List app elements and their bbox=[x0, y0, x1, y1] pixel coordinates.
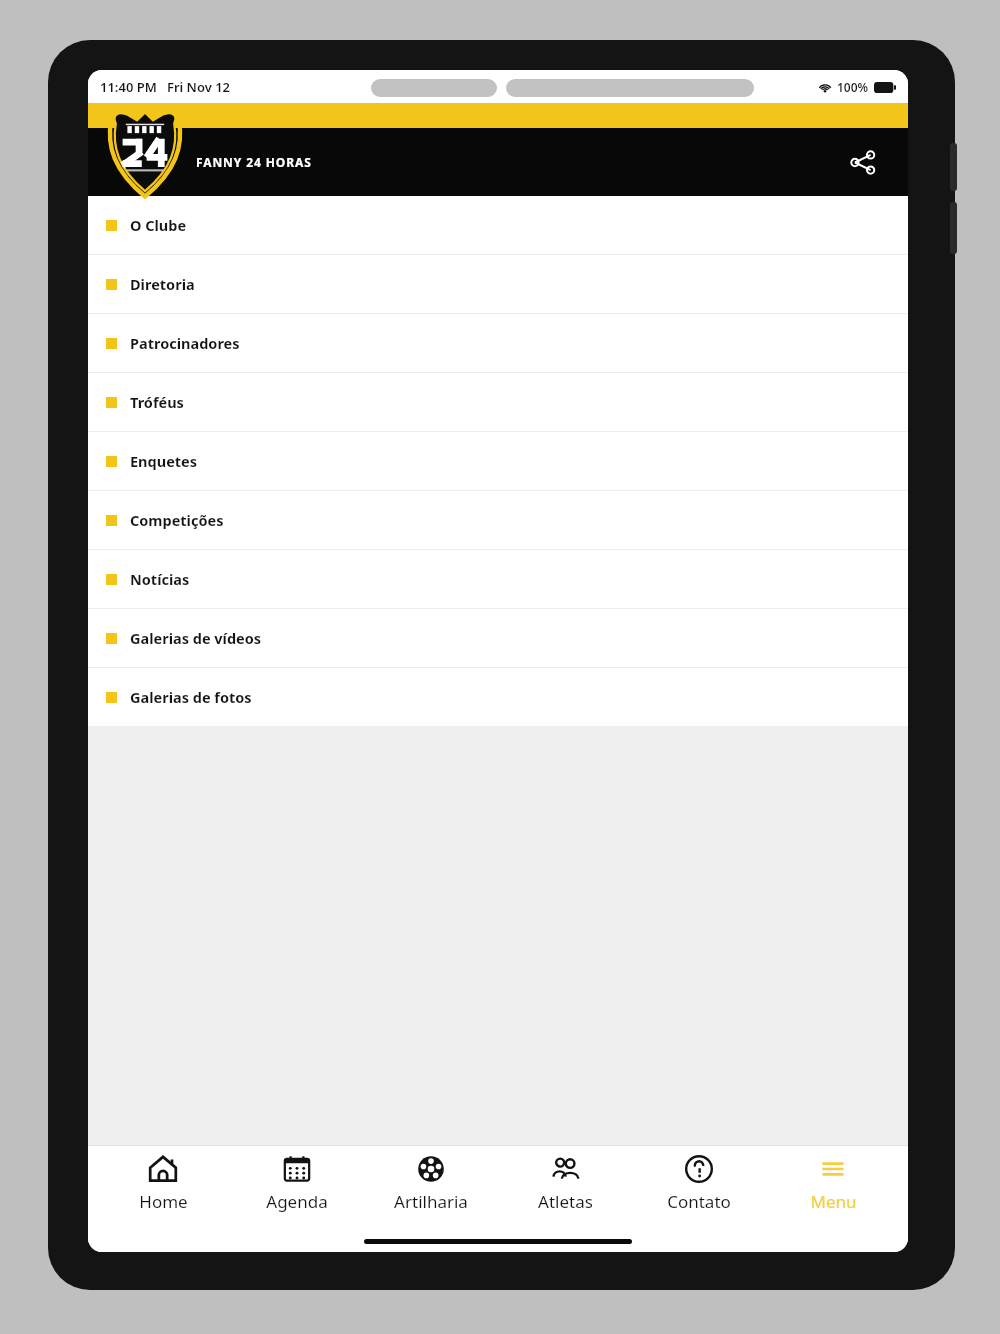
button[interactable]: O Clube bbox=[88, 196, 908, 254]
staticText: Enquetes bbox=[130, 451, 198, 471]
button[interactable]: Atletas bbox=[506, 1153, 624, 1230]
button[interactable]: Artilharia bbox=[372, 1153, 490, 1230]
staticText: Home bbox=[139, 1190, 188, 1213]
button[interactable]: Contato bbox=[640, 1153, 758, 1230]
button[interactable]: Notícias bbox=[88, 550, 908, 608]
staticText: FANNY 24 HORAS bbox=[196, 154, 312, 170]
button[interactable]: Home bbox=[104, 1153, 222, 1230]
staticText: Patrocinadores bbox=[130, 333, 240, 353]
staticText: Tróféus bbox=[130, 392, 184, 412]
staticText: Artilharia bbox=[394, 1190, 468, 1213]
staticText: Galerias de fotos bbox=[130, 687, 252, 707]
staticText: Atletas bbox=[538, 1190, 593, 1213]
staticText: 11:40 PM Fri Nov 12 bbox=[100, 78, 231, 96]
staticText: Notícias bbox=[130, 569, 190, 589]
button[interactable]: Galerias de vídeos bbox=[88, 609, 908, 667]
button[interactable]: Patrocinadores bbox=[88, 314, 908, 372]
staticText: Galerias de vídeos bbox=[130, 628, 262, 648]
staticText: Menu bbox=[810, 1190, 857, 1213]
staticText: Competições bbox=[130, 510, 224, 530]
button[interactable]: Share bbox=[840, 140, 884, 184]
button[interactable]: Galerias de fotos bbox=[88, 668, 908, 726]
staticText: Contato bbox=[667, 1190, 731, 1213]
staticText: 100% bbox=[837, 79, 869, 95]
button[interactable]: Diretoria bbox=[88, 255, 908, 313]
button[interactable]: Tróféus bbox=[88, 373, 908, 431]
staticText: O Clube bbox=[130, 215, 187, 235]
staticText: Agenda bbox=[266, 1190, 328, 1213]
button[interactable]: Competições bbox=[88, 491, 908, 549]
button[interactable]: Menu bbox=[774, 1153, 892, 1230]
button[interactable]: Agenda bbox=[238, 1153, 356, 1230]
staticText: Diretoria bbox=[130, 274, 195, 294]
button[interactable]: Enquetes bbox=[88, 432, 908, 490]
